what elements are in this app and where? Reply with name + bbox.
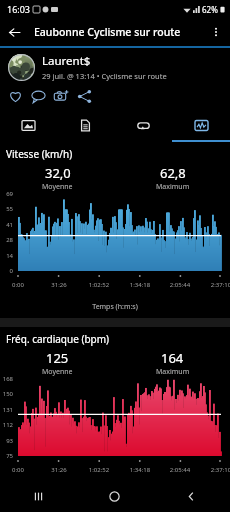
staticText: Laurent$ [42, 53, 91, 69]
staticText: 29 juil. @ 13:14 • Cyclisme sur route [42, 71, 167, 81]
staticText: 41 [0, 221, 13, 229]
staticText: 1:02:52 [88, 281, 110, 289]
staticText: 112 [0, 421, 13, 429]
staticText: 2:05:44 [169, 466, 191, 474]
button[interactable]: Recent apps [0, 480, 76, 512]
staticText: Maximum [156, 182, 190, 192]
button[interactable]: Like [4, 85, 27, 108]
staticText: 93 [0, 437, 13, 445]
staticText: 2:05:44 [169, 281, 191, 289]
staticText: 14 [0, 252, 13, 260]
staticText: 62% [202, 4, 218, 15]
staticText: 2:37:10 [210, 466, 230, 474]
button[interactable]: Comment [27, 85, 50, 108]
staticText: 31:26 [48, 281, 70, 289]
button[interactable]: Back [0, 18, 28, 46]
button[interactable]: Map [0, 112, 57, 142]
staticText: 168 [0, 375, 13, 383]
staticText: Maximum [156, 367, 190, 377]
staticText: 150 [0, 390, 13, 398]
staticText: 1:34:18 [129, 466, 151, 474]
staticText: 0:00 [7, 466, 29, 474]
staticText: 2:37:10 [210, 281, 230, 289]
button[interactable]: Photo [50, 85, 73, 108]
staticText: 125 [46, 349, 69, 367]
staticText: 32,0 [45, 164, 71, 182]
button[interactable]: More options [202, 18, 230, 46]
staticText: Eaubonne Cyclisme sur route [34, 25, 181, 39]
button[interactable]: Laps [114, 112, 172, 142]
staticText: Fréq. cardiaque (bpm) [6, 332, 110, 346]
staticText: 16:03 [7, 3, 31, 15]
staticText: Vitesse (km/h) [6, 147, 73, 161]
staticText: 164 [161, 349, 184, 367]
button[interactable]: Back [153, 480, 230, 512]
staticText: 0:00 [7, 281, 29, 289]
button[interactable]: Share [73, 85, 96, 108]
staticText: 1:34:18 [129, 281, 151, 289]
button[interactable]: Home [76, 480, 153, 512]
staticText: 0 [0, 267, 13, 275]
staticText: Temps (h:m:s) [0, 302, 230, 312]
button[interactable]: Details [57, 112, 114, 142]
button[interactable]: Charts [172, 112, 230, 142]
staticText: 1:02:52 [88, 466, 110, 474]
staticText: 69 [0, 190, 13, 198]
staticText: 62,8 [160, 164, 186, 182]
staticText: 31:26 [48, 466, 70, 474]
staticText: 55 [0, 205, 13, 213]
staticText: 75 [0, 452, 13, 460]
staticText: Moyenne [42, 182, 73, 192]
staticText: Moyenne [42, 367, 73, 377]
staticText: 28 [0, 236, 13, 244]
staticText: 131 [0, 406, 13, 414]
